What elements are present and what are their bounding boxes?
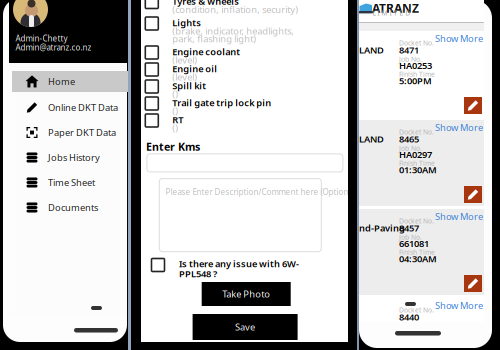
- button[interactable]: Home: [12, 71, 130, 92]
- button[interactable]: Spill kit: [145, 79, 345, 96]
- staticText: park, flashing light): [172, 32, 256, 45]
- staticText: 8440: [399, 311, 419, 323]
- staticText: Home: [48, 75, 75, 88]
- staticText: LAND: [359, 44, 384, 56]
- staticText: Engine coolant: [172, 45, 240, 58]
- staticText: 661081: [399, 237, 429, 250]
- staticText: RT: [172, 113, 183, 126]
- button[interactable]: Take Photo: [202, 282, 291, 306]
- staticText: (level): [172, 54, 197, 66]
- staticText: Show More: [435, 299, 483, 312]
- staticText: 661081: [399, 326, 429, 339]
- staticText: Job No.: [399, 144, 422, 153]
- button[interactable]: Show More: [359, 34, 483, 43]
- staticText: Engine oil: [172, 62, 217, 75]
- button[interactable]: Edit job: [464, 275, 482, 292]
- staticText: Take Photo: [222, 288, 270, 300]
- button[interactable]: Engine coolant: [145, 45, 345, 62]
- staticText: Trail gate trip lock pin: [172, 96, 271, 109]
- staticText: (brake, indicator, headlights,: [172, 25, 294, 37]
- staticText: 8457: [399, 222, 419, 234]
- staticText: (level): [172, 71, 197, 83]
- staticText: Docket No.: [399, 39, 434, 47]
- staticText: Show More: [435, 32, 483, 45]
- staticText: 01:30AM: [399, 163, 437, 176]
- button[interactable]: Show More: [359, 301, 483, 310]
- staticText: Show More: [435, 121, 483, 134]
- staticText: Online DKT Data: [48, 101, 118, 114]
- staticText: Finish Time: [399, 70, 435, 79]
- staticText: Paper DKT Data: [48, 126, 116, 139]
- staticText: ATRANZ: [372, 0, 419, 16]
- staticText: Documents: [48, 201, 98, 214]
- button[interactable]: Time Sheet: [12, 170, 130, 195]
- staticText: Tyres & wheels: [172, 0, 239, 7]
- button[interactable]: Show More: [359, 212, 483, 221]
- button[interactable]: Online DKT Data: [12, 95, 130, 120]
- staticText: 5:00PM: [399, 74, 432, 87]
- staticText: Lights: [172, 16, 201, 29]
- staticText: Jobs History: [48, 151, 100, 164]
- staticText: Docket No.: [399, 128, 434, 136]
- staticText: L I M I T E D: [372, 9, 410, 17]
- staticText: Admin@atranz.co.nz: [15, 42, 91, 53]
- button[interactable]: Lights: [145, 16, 345, 33]
- button[interactable]: Documents: [12, 195, 130, 220]
- staticText: Finish Time: [399, 248, 435, 257]
- button[interactable]: Save: [193, 314, 298, 340]
- staticText: (): [172, 88, 178, 100]
- button[interactable]: Trail gate trip lock pin: [145, 96, 345, 113]
- staticText: Time Sheet: [48, 176, 95, 189]
- staticText: PPL548 ?: [179, 267, 217, 280]
- staticText: Show More: [435, 210, 483, 223]
- staticText: Save: [235, 321, 255, 333]
- staticText: (): [172, 122, 178, 134]
- staticText: (condition, inflation, security): [172, 3, 298, 16]
- staticText: Docket No.: [399, 217, 434, 225]
- button[interactable]: Paper DKT Data: [12, 120, 130, 145]
- staticText: Job No.: [399, 233, 422, 242]
- button[interactable]: Show More: [359, 123, 483, 132]
- button[interactable]: Edit job: [464, 97, 482, 114]
- staticText: 04:30AM: [399, 341, 437, 350]
- staticText: Spill kit: [172, 79, 206, 92]
- staticText: Is there any issue with 6W-: [179, 257, 299, 270]
- staticText: Admin-Chetty: [15, 33, 67, 44]
- button[interactable]: RT: [145, 113, 345, 130]
- staticText: Please Enter Description/Comment here (O…: [165, 186, 356, 197]
- button[interactable]: Jobs History: [12, 145, 130, 170]
- staticText: Enter Kms: [146, 139, 200, 154]
- staticText: nd-Paving: [359, 222, 405, 234]
- staticText: Docket No.: [399, 306, 434, 314]
- button[interactable]: Tyres & wheels: [145, 0, 345, 12]
- staticText: 8471: [399, 44, 419, 56]
- staticText: Job No.: [399, 55, 422, 64]
- staticText: 8465: [399, 133, 419, 145]
- staticText: HA0253: [399, 59, 432, 72]
- button[interactable]: Engine oil: [145, 62, 345, 79]
- staticText: LAND: [359, 133, 384, 145]
- staticText: 04:30AM: [399, 252, 437, 265]
- staticText: Finish Time: [399, 159, 435, 168]
- staticText: HA0297: [399, 148, 432, 161]
- button[interactable]: Edit job: [464, 186, 482, 203]
- staticText: (): [172, 105, 178, 117]
